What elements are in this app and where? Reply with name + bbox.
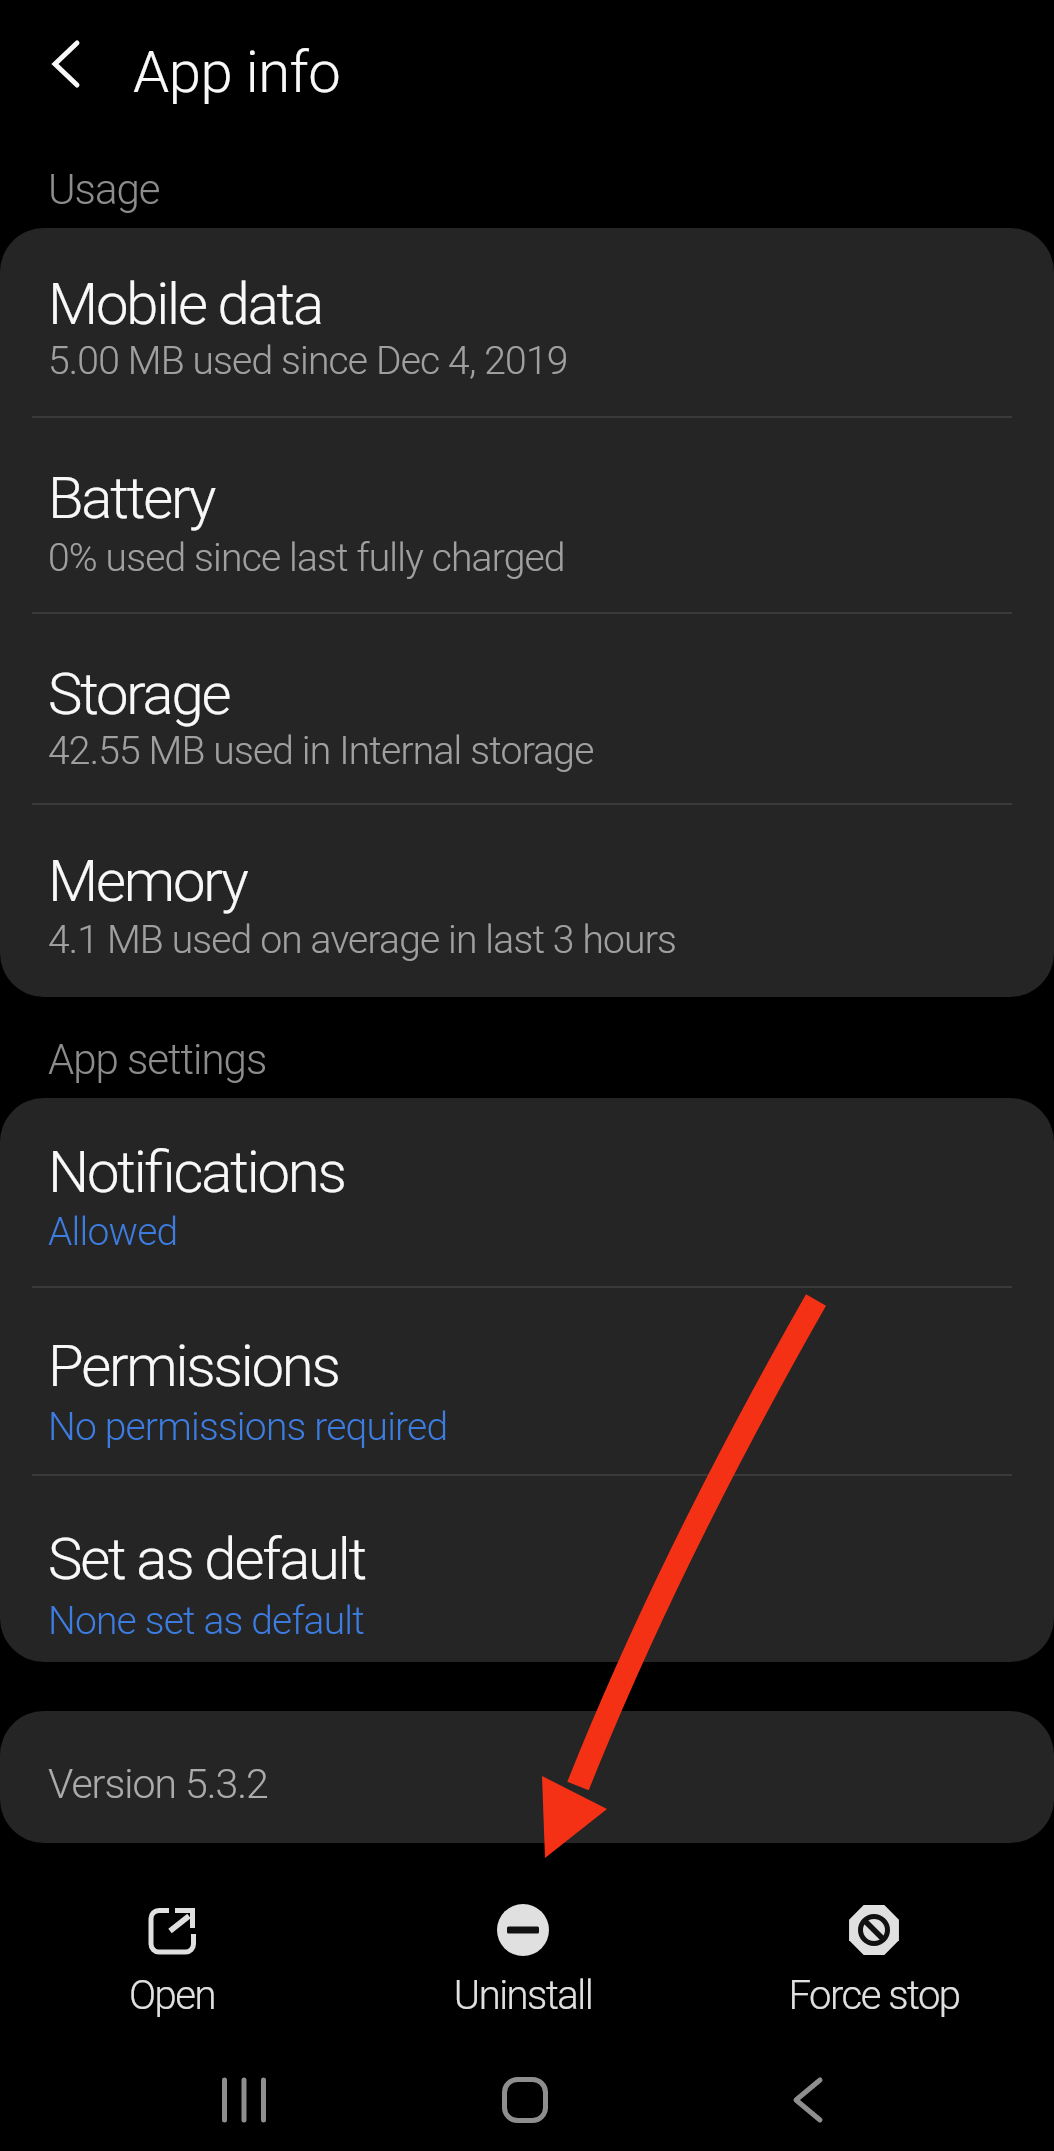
staticText: Memory <box>48 847 247 915</box>
button[interactable] <box>433 1886 613 2026</box>
staticText: Permissions <box>48 1332 339 1400</box>
staticText: Uninstall <box>433 1972 613 2019</box>
button[interactable] <box>28 38 100 90</box>
button[interactable]: Version 5.3.2 <box>0 1711 1054 1843</box>
button[interactable]: Set as default <box>0 1476 1054 1662</box>
button[interactable]: Memory <box>0 805 1054 997</box>
button[interactable] <box>774 1886 974 2026</box>
staticText: Force stop <box>774 1972 974 2019</box>
staticText: Allowed <box>48 1209 178 1255</box>
button[interactable]: Notifications <box>0 1098 1054 1288</box>
button[interactable]: Storage <box>0 614 1054 805</box>
button[interactable] <box>184 2056 304 2146</box>
staticText: Set as default <box>48 1525 366 1593</box>
staticText: 0% used since last fully charged <box>48 535 565 581</box>
staticText: 4.1 MB used on average in last 3 hours <box>48 917 677 963</box>
staticText: None set as default <box>48 1598 365 1644</box>
staticText: 5.00 MB used since Dec 4, 2019 <box>48 338 568 384</box>
button[interactable] <box>465 2056 585 2146</box>
button[interactable] <box>748 2056 868 2146</box>
staticText: Storage <box>48 660 230 728</box>
staticText: 42.55 MB used in Internal storage <box>48 728 594 774</box>
staticText: App info <box>133 38 341 106</box>
staticText: App settings <box>48 1035 267 1084</box>
staticText: Battery <box>48 464 215 532</box>
button[interactable] <box>82 1886 262 2026</box>
button[interactable]: Permissions <box>0 1288 1054 1476</box>
staticText: Open <box>82 1972 262 2019</box>
staticText: Version 5.3.2 <box>48 1760 268 1808</box>
staticText: Notifications <box>48 1138 345 1206</box>
staticText: No permissions required <box>48 1404 448 1450</box>
staticText: Mobile data <box>48 270 322 338</box>
button[interactable]: Mobile data <box>0 228 1054 418</box>
staticText: Usage <box>48 165 160 214</box>
button[interactable]: Battery <box>0 418 1054 614</box>
